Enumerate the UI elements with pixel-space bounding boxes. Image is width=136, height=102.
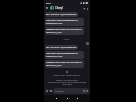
button[interactable]: Home bbox=[65, 96, 70, 101]
button[interactable]: Message bbox=[55, 88, 88, 94]
staticText: Message bbox=[55, 90, 64, 93]
staticText: Cheryl bbox=[55, 6, 63, 10]
staticText: 10:42 bbox=[64, 38, 70, 41]
button[interactable]: Back bbox=[54, 96, 59, 101]
button[interactable]: Back bbox=[45, 6, 49, 10]
staticText: Hi! I am your 10,000 program bbox=[46, 46, 77, 49]
staticText: Report your danger feature bbox=[54, 74, 80, 77]
staticText: Next your extra participation in interne… bbox=[46, 52, 83, 58]
button[interactable]: Next your extra participation in interne… bbox=[46, 19, 83, 25]
staticText: Available the order on TV's https://bit.… bbox=[46, 28, 83, 34]
staticText: Available the order on TV's https://bit.… bbox=[46, 61, 83, 67]
button[interactable]: Camera bbox=[49, 89, 53, 93]
button[interactable]: Next your extra participation in interne… bbox=[46, 52, 83, 58]
button[interactable]: Available the order on TV's https://bit.… bbox=[46, 28, 83, 34]
staticText: Hi! I am your 10,000 program bbox=[46, 13, 77, 16]
button[interactable]: Add attachment bbox=[45, 89, 49, 93]
staticText: 9:41 bbox=[46, 1, 51, 4]
button[interactable]: Recent apps bbox=[75, 96, 80, 101]
button[interactable]: Available the order on TV's https://bit.… bbox=[46, 61, 83, 67]
button[interactable]: Report your danger feature bbox=[45, 71, 89, 77]
button[interactable]: Hi! I am your 10,000 program bbox=[46, 13, 77, 16]
staticText: Called by the text provider Messages and… bbox=[45, 79, 89, 85]
button[interactable]: Call bbox=[82, 6, 86, 10]
button[interactable]: Hi! I am your 10,000 program bbox=[46, 46, 77, 49]
button[interactable]: More options bbox=[86, 7, 89, 10]
staticText: Next your extra participation in interne… bbox=[46, 19, 83, 25]
